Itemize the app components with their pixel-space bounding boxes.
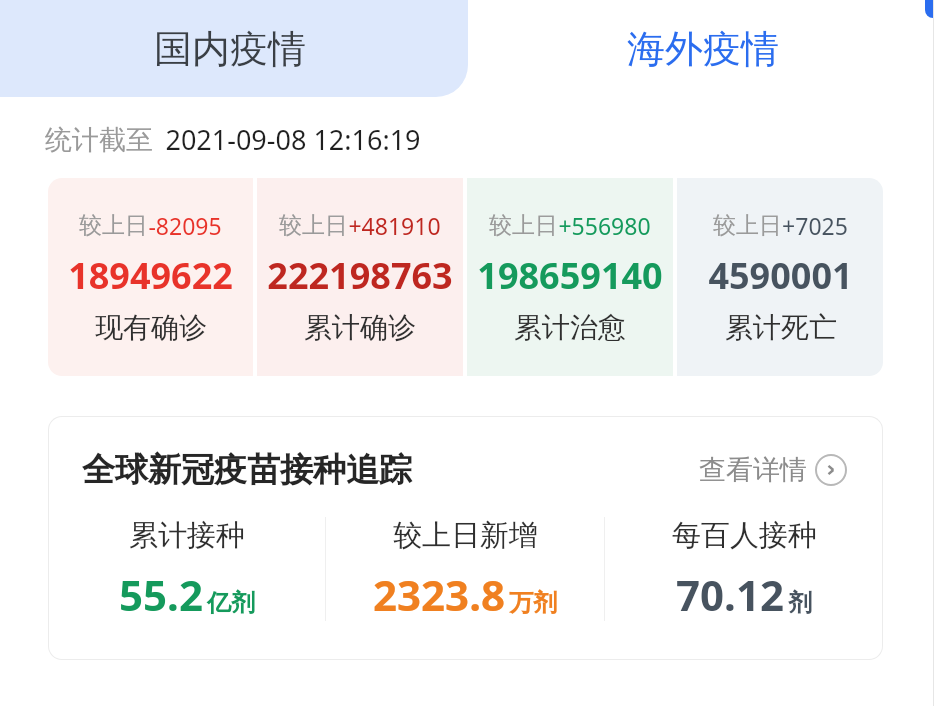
staticText: 55.2 [119,566,203,623]
staticText: 2323.8 [373,566,505,623]
button[interactable]: 查看详情 [699,453,847,487]
staticText: 70.12 [676,566,784,623]
staticText: 每百人接种 [672,517,817,554]
staticText: 较上日 [713,211,782,240]
staticText: 4590001 [708,251,853,300]
staticText: 2021-09-08 12:16:19 [165,121,421,158]
staticText: 万剂 [509,588,557,618]
button[interactable]: 每百人接种 [605,517,883,637]
button[interactable]: 累计接种 [48,517,325,637]
staticText: 累计治愈 [514,310,626,345]
staticText: 较上日 [79,211,148,240]
button[interactable]: 较上日 [257,178,463,376]
staticText: +7025 [782,210,848,241]
staticText: 国内疫情 [154,25,306,73]
staticText: 累计接种 [129,517,245,554]
staticText: 较上日新增 [393,517,538,554]
staticText: 198659140 [477,251,663,300]
staticText: +556980 [558,210,651,241]
button[interactable]: 较上日新增 [326,517,604,637]
staticText: 现有确诊 [95,310,207,345]
staticText: 海外疫情 [627,25,779,73]
button[interactable]: 较上日 [677,178,883,376]
button[interactable]: 海外疫情 [468,0,933,97]
staticText: 较上日 [489,211,558,240]
staticText: 全球新冠疫苗接种追踪 [82,449,412,491]
button[interactable]: 较上日 [467,178,673,376]
staticText: +481910 [348,210,441,241]
staticText: 统计截至 [45,123,153,157]
button[interactable]: 国内疫情 [0,0,468,97]
staticText: 亿剂 [207,588,255,618]
staticText: 累计确诊 [304,310,416,345]
staticText: 222198763 [267,251,453,300]
button[interactable]: 较上日 [48,178,253,376]
staticText: 查看详情 [699,453,807,487]
staticText: 18949622 [68,251,233,300]
staticText: 累计死亡 [725,310,837,345]
staticText: -82095 [148,210,222,241]
staticText: 较上日 [279,211,348,240]
staticText: 剂 [788,588,812,618]
